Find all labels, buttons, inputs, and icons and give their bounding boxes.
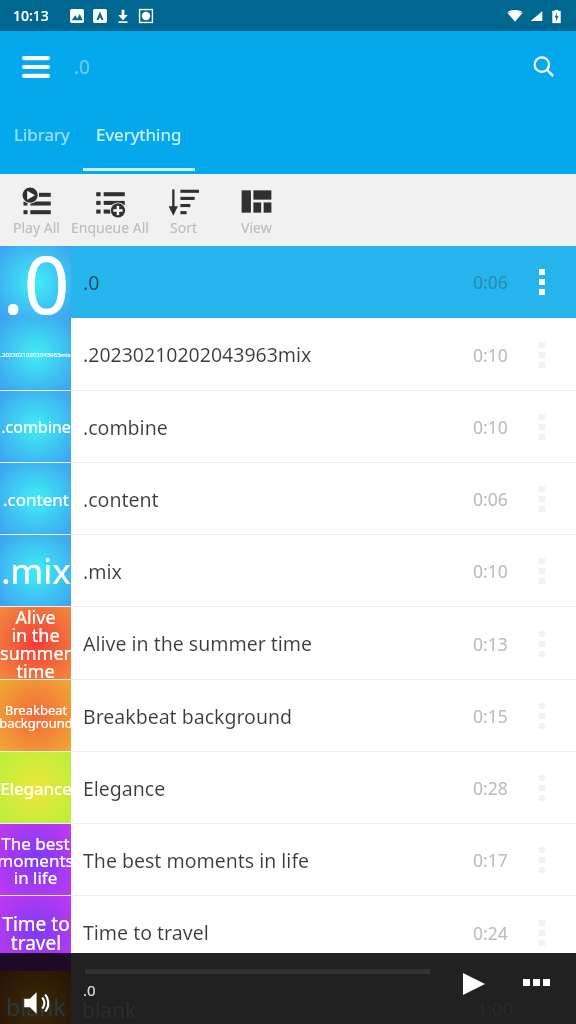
staticText: .20230210202043963mix (0, 351, 71, 359)
button[interactable]: More options (508, 896, 576, 969)
button[interactable]: Now playing artwork (0, 971, 71, 1024)
button[interactable]: Elegance (0, 752, 576, 824)
staticText: .combine (1, 416, 71, 438)
staticText: 0:10 (473, 559, 508, 583)
staticText: 0:28 (473, 776, 508, 800)
staticText: .content (83, 486, 473, 513)
button[interactable]: Everything (83, 102, 195, 174)
staticText: .20230210202043963mix (83, 341, 473, 368)
button[interactable]: Breakbeat background (0, 680, 576, 752)
staticText: Breakbeat background (0, 701, 71, 732)
button[interactable]: .20230210202043963mix (0, 318, 576, 391)
button[interactable]: Sort (147, 174, 220, 246)
staticText: The best moments in life (83, 847, 473, 874)
staticText: .0 (74, 54, 90, 80)
button[interactable]: Enqueue All (73, 174, 147, 246)
staticText: 0:15 (473, 704, 508, 728)
staticText: Play All (13, 218, 60, 237)
staticText: .mix (83, 558, 473, 585)
button[interactable]: Play All (0, 174, 73, 246)
button[interactable]: View (220, 174, 293, 246)
staticText: 0:24 (473, 921, 508, 945)
staticText: 0:10 (473, 343, 508, 367)
staticText: Elegance (83, 775, 473, 802)
button[interactable]: The best moments in life (0, 824, 576, 896)
staticText: Sort (170, 218, 197, 237)
staticText: The best moments in life (0, 832, 71, 889)
button[interactable]: Alive in the summer time (0, 607, 576, 680)
staticText: .0 (83, 980, 96, 1000)
staticText: .content (3, 488, 69, 511)
staticText: Time to travel (83, 919, 473, 946)
staticText: .combine (83, 414, 473, 441)
staticText: 0:17 (473, 848, 508, 872)
staticText: blank (6, 991, 66, 1022)
staticText: .0 (83, 269, 473, 296)
staticText: 0:06 (473, 270, 508, 294)
button[interactable]: .0 (0, 246, 576, 318)
button[interactable]: .combine (0, 391, 576, 463)
staticText: blank (82, 996, 137, 1024)
button[interactable]: Menu (12, 43, 60, 91)
staticText: .mix (1, 547, 71, 595)
button[interactable]: Play (448, 953, 500, 1024)
staticText: Everything (96, 123, 182, 146)
button[interactable]: More (510, 953, 562, 1024)
button[interactable]: More options (508, 246, 576, 318)
staticText: View (241, 218, 272, 237)
button[interactable]: Library (0, 102, 83, 174)
staticText: .0 (2, 246, 70, 318)
staticText: Library (14, 123, 70, 146)
staticText: Elegance (0, 777, 71, 800)
staticText: 0:13 (473, 632, 508, 656)
button[interactable]: Time to travel (0, 896, 576, 969)
staticText: Time to travel (2, 911, 70, 955)
button[interactable]: Search (520, 43, 568, 91)
staticText: Alive in the summer time (0, 607, 71, 680)
button[interactable]: .content (0, 463, 576, 535)
staticText: Alive in the summer time (83, 630, 473, 657)
staticText: Enqueue All (71, 218, 149, 237)
staticText: 0:10 (473, 415, 508, 439)
button[interactable]: .mix (0, 535, 576, 607)
staticText: Breakbeat background (83, 703, 473, 730)
staticText: 0:06 (473, 487, 508, 511)
staticText: 10:13 (13, 6, 49, 25)
